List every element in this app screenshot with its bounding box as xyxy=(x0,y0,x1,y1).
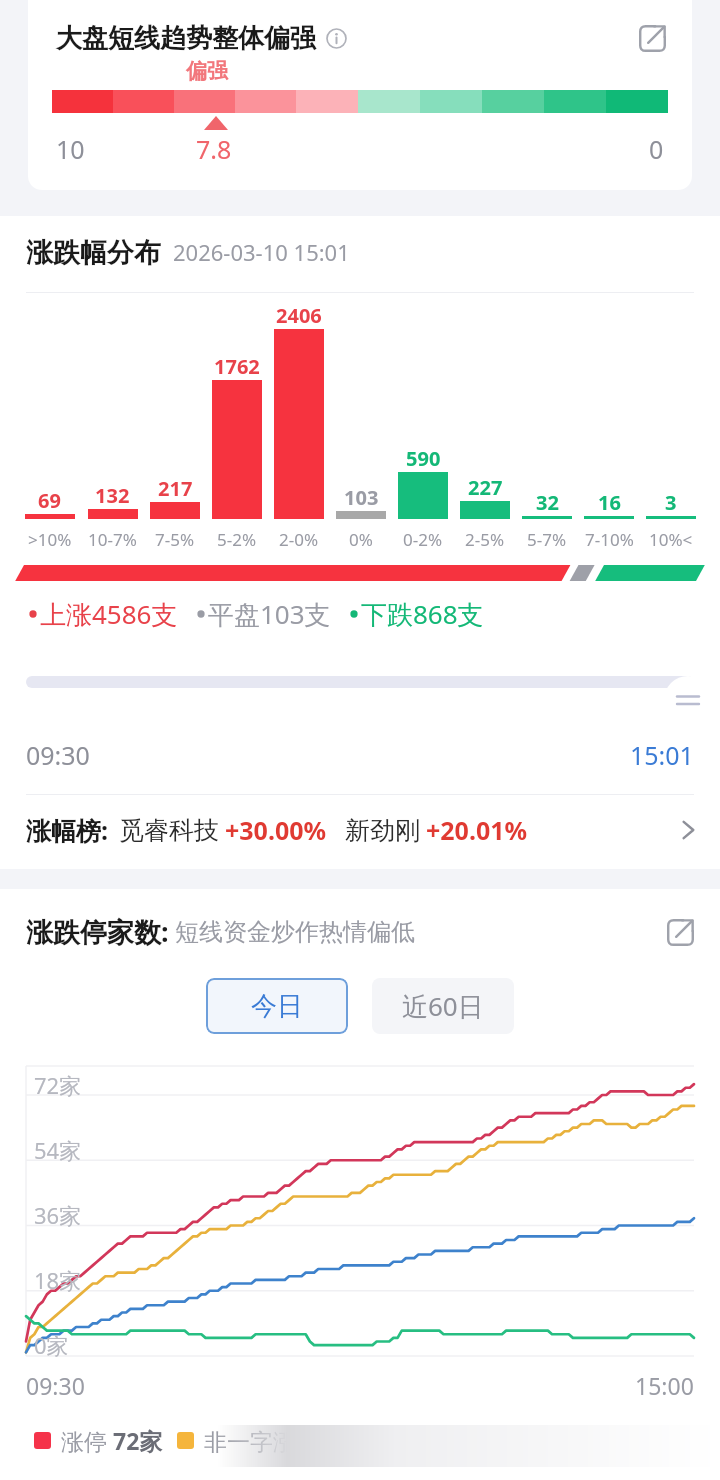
staticText: 09:30 xyxy=(26,1370,85,1401)
staticText: 平盘103支 xyxy=(208,596,331,632)
other: 更多 xyxy=(676,818,700,842)
button[interactable]: 打开详情 xyxy=(634,20,670,56)
staticText: 0% xyxy=(349,528,373,551)
staticText: 36家 xyxy=(34,1200,82,1230)
staticText: 新劲刚 xyxy=(345,815,420,846)
staticText: 偏强 xyxy=(186,58,228,84)
staticText: 下跌868支 xyxy=(361,596,484,632)
staticText: 2026-03-10 15:01 xyxy=(173,237,350,267)
staticText: 0家 xyxy=(34,1330,69,1360)
staticText: 54家 xyxy=(34,1135,82,1165)
staticText: 16 xyxy=(598,489,621,516)
staticText: 7.8 xyxy=(196,132,232,166)
staticText: 涨幅榜: xyxy=(26,813,109,847)
staticText: 72家 xyxy=(34,1070,82,1100)
button[interactable]: 打开涨跌停详情 xyxy=(662,914,698,950)
other: 信息 xyxy=(326,28,347,49)
staticText: 3 xyxy=(665,489,677,516)
staticText: 0 xyxy=(649,132,664,166)
staticText: 短线资金炒作热情偏低 xyxy=(175,917,415,947)
staticText: 2406 xyxy=(276,302,322,329)
staticText: 217 xyxy=(158,475,193,502)
staticText: 涨停 xyxy=(61,1425,113,1456)
staticText: 132 xyxy=(95,482,130,509)
staticText: 15:00 xyxy=(635,1370,694,1401)
staticText: 1762 xyxy=(214,353,260,380)
staticText: +30.00% xyxy=(225,813,327,847)
button[interactable]: 大盘短线趋势整体偏强 xyxy=(28,0,692,190)
staticText: 10-7% xyxy=(88,528,137,551)
button[interactable]: 拖动 xyxy=(664,676,712,724)
staticText: 近60日 xyxy=(402,988,484,1024)
staticText: 69 xyxy=(38,487,61,514)
staticText: +20.01% xyxy=(426,813,528,847)
button[interactable]: 涨幅榜: xyxy=(0,795,720,865)
staticText: 5-2% xyxy=(217,528,257,551)
staticText: 涨跌幅分布 xyxy=(26,236,161,270)
staticText: 2-0% xyxy=(279,528,319,551)
staticText: 15:01 xyxy=(630,738,694,772)
staticText: 非一字涨停 60家 xyxy=(204,1425,375,1456)
staticText: >10% xyxy=(28,528,72,551)
staticText: 10%< xyxy=(649,528,693,551)
staticText: 0-2% xyxy=(403,528,443,551)
staticText: 涨跌停家数: xyxy=(26,913,169,950)
staticText: 590 xyxy=(406,445,441,472)
button[interactable]: 近60日 xyxy=(372,978,514,1034)
staticText: 大盘短线趋势整体偏强 xyxy=(56,22,316,55)
staticText: 72家 xyxy=(113,1425,163,1456)
staticText: 09:30 xyxy=(26,738,90,772)
button[interactable]: 今日 xyxy=(206,978,348,1034)
staticText: 上涨4586支 xyxy=(40,596,178,632)
staticText: 5-7% xyxy=(527,528,567,551)
staticText: 7-5% xyxy=(155,528,195,551)
staticText: 7-10% xyxy=(585,528,634,551)
staticText: 今日 xyxy=(251,990,303,1023)
staticText: 103 xyxy=(344,484,379,511)
staticText: 2-5% xyxy=(465,528,505,551)
staticText: 32 xyxy=(536,489,559,516)
staticText: 觅睿科技 xyxy=(119,815,219,846)
staticText: 18家 xyxy=(34,1265,82,1295)
staticText: 227 xyxy=(468,474,503,501)
staticText: 10 xyxy=(56,132,85,166)
